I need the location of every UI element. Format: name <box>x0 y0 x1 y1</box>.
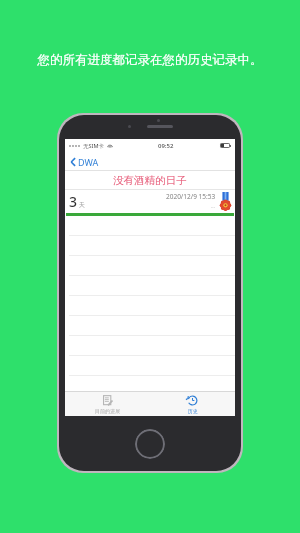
staticText: 没有酒精的日子 <box>113 174 187 187</box>
staticText: 您的所有进度都记录在您的历史记录中。 <box>14 52 286 68</box>
staticText: 历史 <box>188 408 198 414</box>
other: Medal <box>220 192 231 211</box>
staticText: 3 <box>69 192 78 211</box>
other: History <box>187 395 198 406</box>
staticText: ··· <box>211 204 216 211</box>
staticText: 09:52 <box>158 142 174 150</box>
staticText: 无SIM卡 <box>83 142 105 150</box>
staticText: 天 <box>79 201 85 209</box>
button[interactable]: 3 <box>65 189 235 213</box>
staticText: DWA <box>78 156 99 168</box>
other: Current progress <box>102 395 113 406</box>
button[interactable]: Current progress <box>65 392 150 416</box>
button[interactable]: Home <box>135 429 165 459</box>
button[interactable]: History <box>150 392 235 416</box>
staticText: 目前的进展 <box>95 408 120 414</box>
button[interactable]: DWA <box>68 154 101 170</box>
staticText: 2020/12/9 15:53 <box>166 192 216 201</box>
